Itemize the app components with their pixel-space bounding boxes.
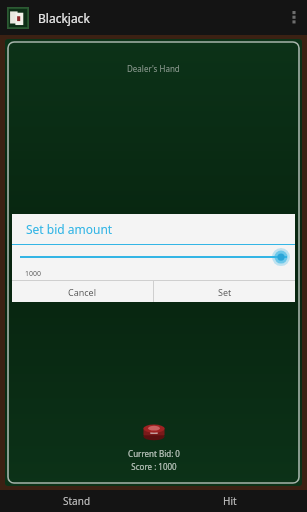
staticText: Current Bid: 0 [128, 448, 180, 459]
button[interactable]: Cancel [12, 281, 153, 302]
staticText: 1000 [25, 269, 42, 279]
staticText: Cancel [68, 286, 97, 298]
button[interactable]: Bid amount slider [12, 245, 295, 267]
button[interactable]: Stand [0, 490, 153, 512]
button[interactable]: Hit [153, 490, 307, 512]
staticText: Set bid amount [26, 221, 113, 237]
staticText: Blackjack [38, 10, 90, 26]
staticText: Hit [223, 494, 237, 508]
staticText: Score : 1000 [131, 461, 177, 472]
button[interactable]: More options [281, 0, 307, 35]
staticText: Stand [63, 494, 91, 508]
staticText: Set [218, 286, 232, 298]
button[interactable]: Set [154, 281, 295, 302]
staticText: Dealer's Hand [127, 63, 180, 74]
